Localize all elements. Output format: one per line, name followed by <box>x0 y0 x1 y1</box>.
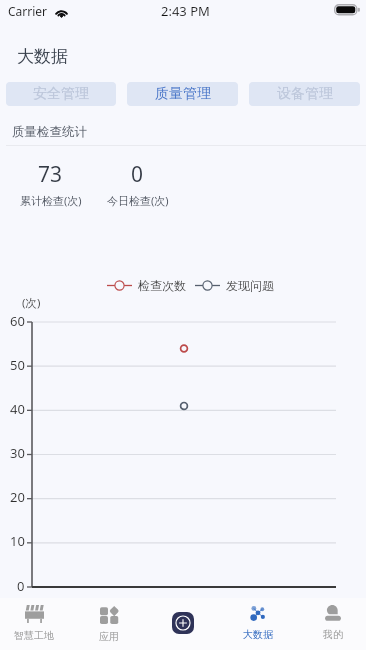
button[interactable]: 0 <box>94 152 181 215</box>
staticText: 我的 <box>323 628 343 641</box>
staticText: 今日检查(次) <box>107 193 169 208</box>
staticText: 检查次数 <box>138 278 186 293</box>
staticText: 40 <box>10 400 25 415</box>
button[interactable]: 检查次数 <box>107 278 186 293</box>
button[interactable]: 73 <box>7 152 94 215</box>
staticText: 智慧工地 <box>14 629 54 642</box>
staticText: 大数据 <box>243 628 273 641</box>
staticText: 质量检查统计 <box>12 124 87 140</box>
button[interactable]: 应用 <box>72 598 146 650</box>
staticText: 安全管理 <box>33 85 89 103</box>
staticText: 73 <box>38 160 63 189</box>
staticText: 设备管理 <box>277 85 333 103</box>
staticText: 质量管理 <box>155 85 211 103</box>
staticText: 累计检查(次) <box>20 193 82 208</box>
staticText: 应用 <box>99 630 119 643</box>
staticText: 0 <box>131 160 144 189</box>
staticText: 发现问题 <box>226 278 274 293</box>
staticText: 2:43 PM <box>161 2 210 20</box>
staticText: 大数据 <box>17 46 68 67</box>
button[interactable]: Add new <box>146 598 220 650</box>
staticText: 50 <box>10 356 25 371</box>
button[interactable]: 大数据 <box>221 598 295 650</box>
staticText: 60 <box>10 312 25 327</box>
staticText: 30 <box>10 444 25 459</box>
button[interactable]: 我的 <box>296 598 366 650</box>
staticText: Carrier <box>8 3 48 19</box>
staticText: 0 <box>17 577 25 592</box>
staticText: (次) <box>22 295 41 311</box>
button[interactable]: 安全管理 <box>6 82 116 106</box>
button[interactable]: 发现问题 <box>195 278 274 293</box>
button[interactable]: 设备管理 <box>249 82 360 106</box>
button[interactable]: 质量管理 <box>127 82 238 106</box>
staticText: 10 <box>10 532 25 547</box>
button[interactable]: 智慧工地 <box>0 598 71 650</box>
staticText: 20 <box>10 488 25 503</box>
